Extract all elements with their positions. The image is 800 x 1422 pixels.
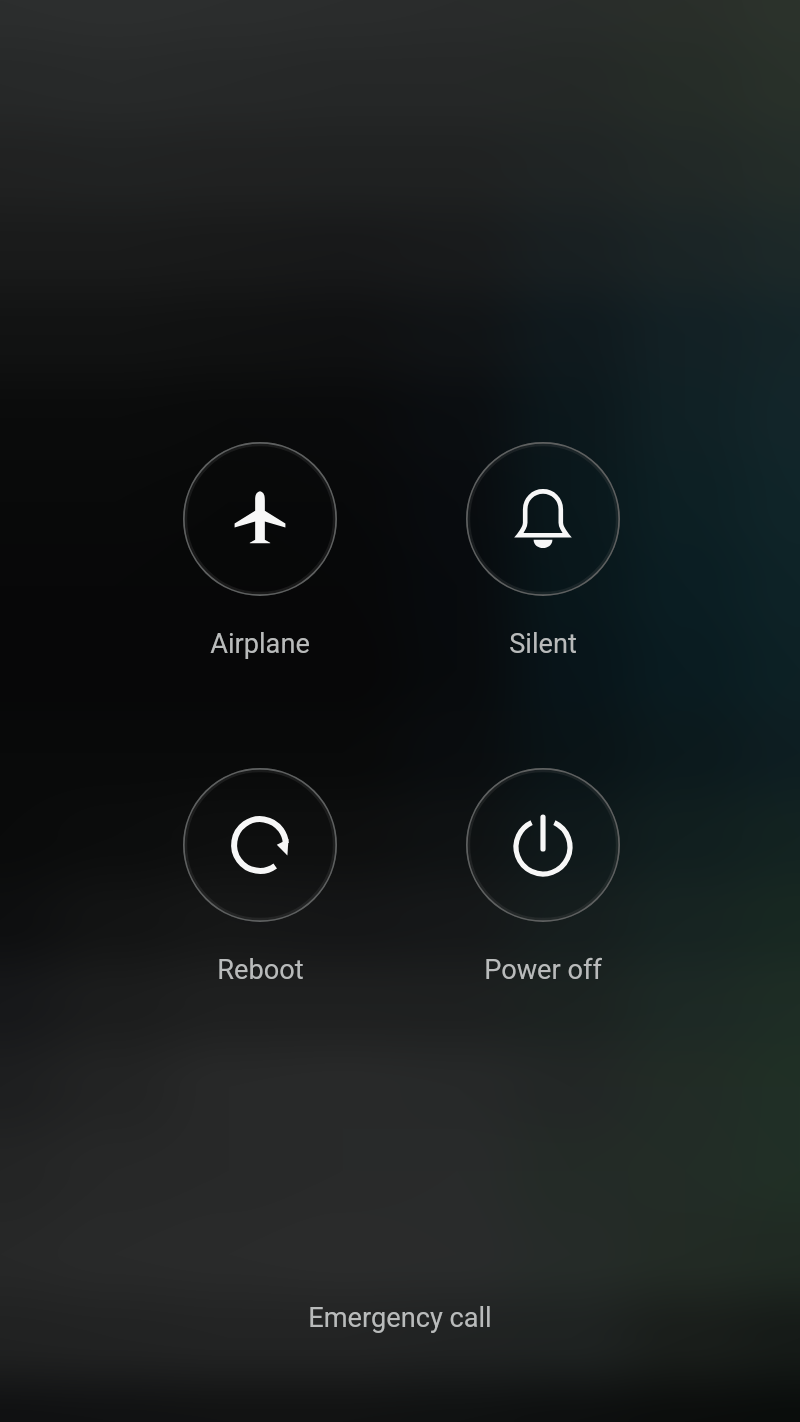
button[interactable]: Reboot (165, 768, 355, 996)
staticText: Power off (484, 954, 602, 986)
button[interactable]: Silent (448, 442, 638, 670)
staticText: Reboot (217, 954, 304, 986)
staticText: Silent (509, 628, 577, 660)
button[interactable]: Emergency call (250, 1288, 550, 1348)
staticText: Emergency call (308, 1302, 492, 1334)
staticText: Airplane (210, 628, 310, 660)
button[interactable]: Power off (448, 768, 638, 996)
button[interactable]: Airplane (165, 442, 355, 670)
